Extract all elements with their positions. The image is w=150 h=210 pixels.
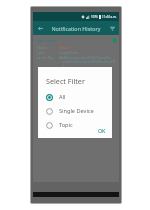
- staticText: Select Filter: [46, 76, 85, 86]
- staticText: All: [59, 93, 66, 101]
- staticText: singleDevice: [59, 50, 79, 54]
- staticText: Server Key: [37, 55, 54, 59]
- button[interactable]: Topic: [46, 121, 107, 129]
- staticText: Status: [37, 45, 54, 49]
- staticText: 100%: [91, 15, 98, 19]
- staticText: AAAAxxxxxxxxabcd2K5s7sstcy5w: [59, 55, 111, 59]
- button[interactable]: Single Device: [46, 107, 107, 115]
- staticText: Single Device: [59, 107, 94, 115]
- button[interactable]: All: [46, 93, 107, 101]
- staticText: OK: [98, 127, 106, 134]
- staticText: Failure: [59, 45, 70, 49]
- staticText: Json Name: [37, 38, 57, 43]
- staticText: edkdksj23kxlsk6x23WldFknsdss23fe: [63, 60, 116, 68]
- staticText: 11:44 a.m.: [102, 15, 117, 19]
- staticText: Type: [37, 50, 54, 54]
- staticText: Notification History: [51, 25, 101, 32]
- staticText: Topic: [59, 121, 73, 129]
- button[interactable]: OK: [96, 126, 108, 135]
- button[interactable]: Filter: [107, 23, 117, 33]
- button[interactable]: Back: [35, 23, 45, 33]
